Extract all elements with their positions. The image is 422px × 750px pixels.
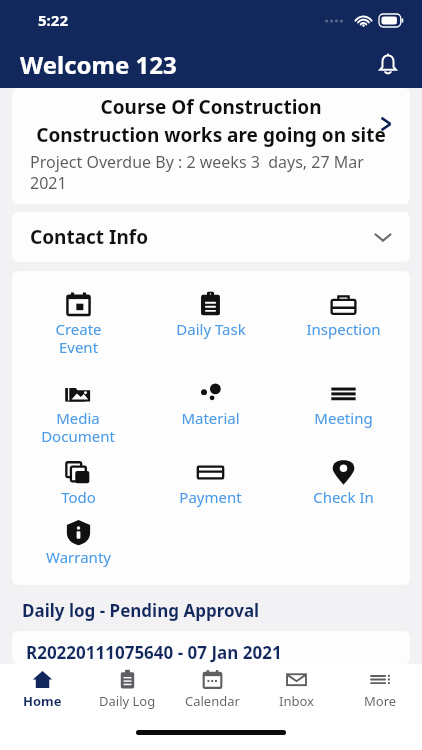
- button[interactable]: Create Event: [12, 289, 144, 360]
- staticText: Inspection: [306, 319, 381, 339]
- staticText: Daily log - Pending Approval: [22, 599, 260, 622]
- staticText: Course Of Construction: [12, 94, 410, 120]
- button[interactable]: Daily Log: [85, 664, 170, 714]
- staticText: Inbox: [279, 692, 314, 710]
- staticText: Daily Task: [176, 319, 246, 339]
- staticText: Check In: [313, 487, 374, 507]
- staticText: R20220111075640 - 07 Jan 2021: [26, 641, 282, 664]
- staticText: Material: [181, 408, 240, 428]
- staticText: Daily Log: [99, 692, 156, 710]
- button[interactable]: Warranty: [12, 517, 144, 569]
- staticText: More: [364, 692, 397, 710]
- staticText: Warranty: [46, 547, 111, 567]
- staticText: Payment: [179, 487, 242, 507]
- button[interactable]: Daily Task: [144, 289, 277, 341]
- button[interactable]: Inbox: [254, 664, 338, 714]
- staticText: 5:22: [38, 10, 68, 30]
- staticText: Create Event: [55, 319, 102, 358]
- staticText: Project Overdue By : 2 weeks 3 days, 27 …: [30, 151, 390, 194]
- button[interactable]: Todo: [12, 457, 144, 509]
- button[interactable]: Calendar: [170, 664, 254, 714]
- button[interactable]: Home: [0, 664, 85, 714]
- staticText: Welcome 123: [20, 48, 177, 81]
- button[interactable]: Material: [144, 378, 277, 430]
- button[interactable]: Check In: [277, 457, 410, 509]
- button[interactable]: Course Of Construction: [12, 88, 410, 204]
- button[interactable]: Payment: [144, 457, 277, 509]
- button[interactable]: Contact Info: [12, 212, 410, 262]
- staticText: Contact Info: [30, 224, 149, 250]
- staticText: Media Document: [41, 408, 115, 447]
- staticText: Calendar: [185, 692, 240, 710]
- button[interactable]: More: [338, 664, 422, 714]
- button[interactable]: Inspection: [277, 289, 410, 341]
- staticText: Todo: [61, 487, 96, 507]
- button[interactable]: Meeting: [277, 378, 410, 430]
- button[interactable]: Notifications: [366, 42, 410, 86]
- staticText: Home: [23, 692, 62, 710]
- staticText: Meeting: [314, 408, 373, 428]
- button[interactable]: R20220111075640 - 07 Jan 2021: [12, 631, 410, 664]
- button[interactable]: Media Document: [12, 378, 144, 449]
- staticText: Construction works are going on site: [12, 122, 410, 148]
